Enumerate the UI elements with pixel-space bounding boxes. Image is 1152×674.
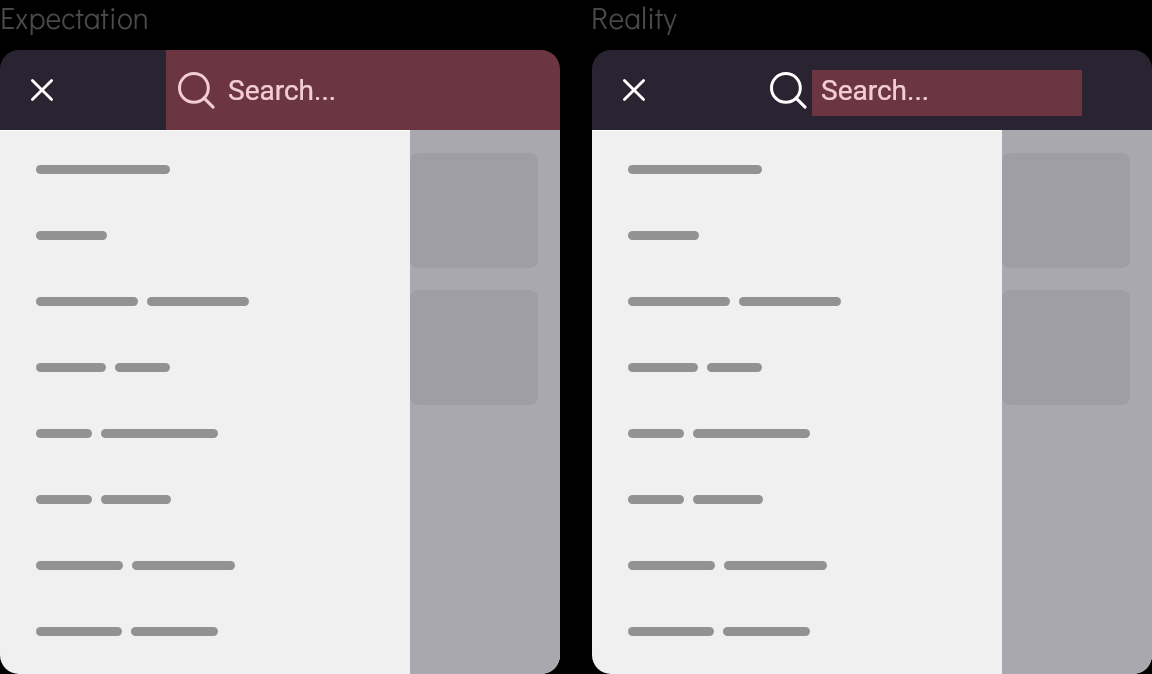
- button[interactable]: Search: [166, 50, 560, 130]
- other: Search: [176, 70, 212, 106]
- button[interactable]: Search...: [812, 70, 1082, 116]
- staticText: Search...: [821, 74, 930, 107]
- staticText: Search...: [228, 74, 337, 107]
- staticText: Reality: [591, 0, 677, 37]
- button[interactable]: Close: [610, 66, 658, 114]
- other: Search: [768, 70, 804, 106]
- button[interactable]: Close: [18, 66, 66, 114]
- staticText: Expectation: [0, 0, 149, 37]
